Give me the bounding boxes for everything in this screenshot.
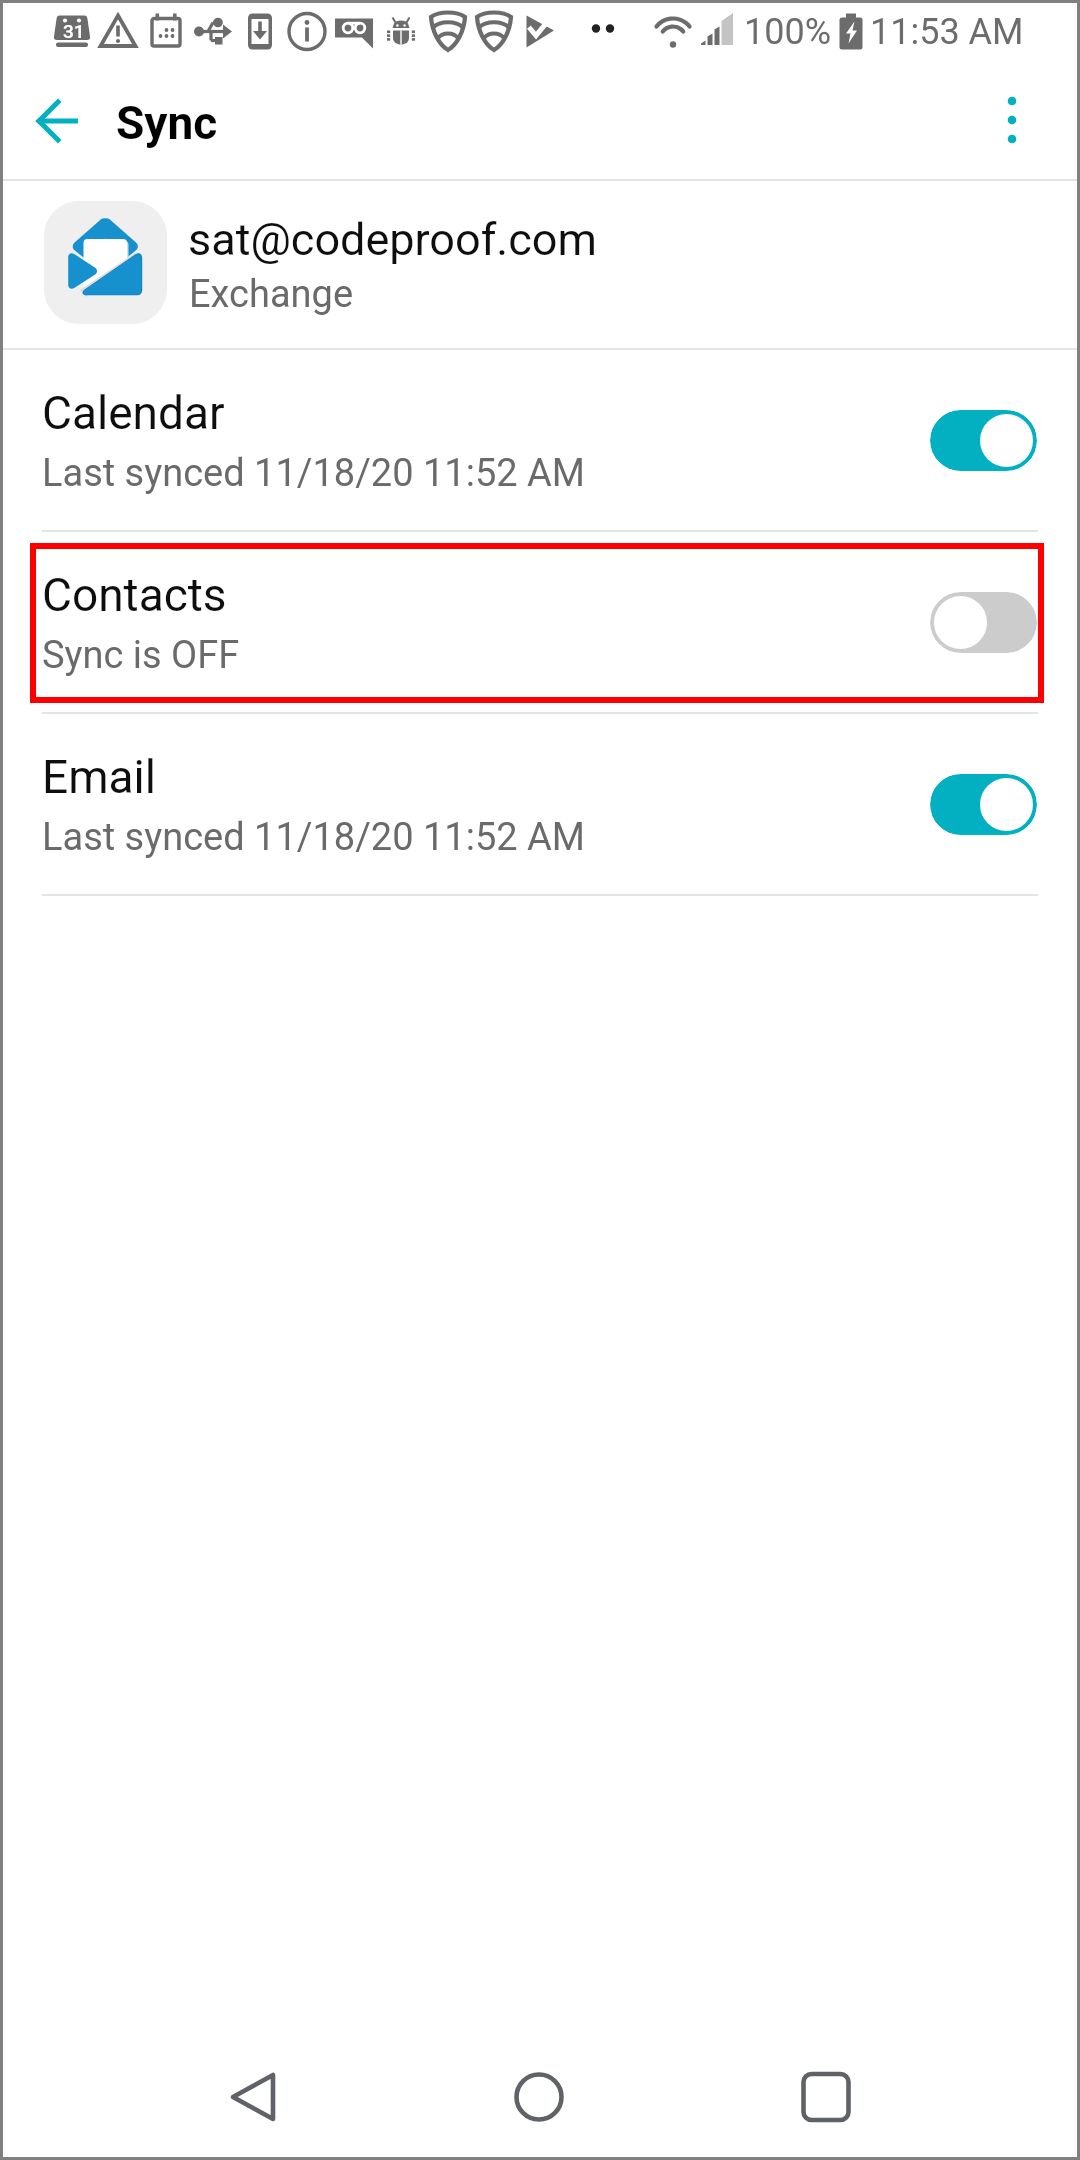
button[interactable]: Contacts [0, 532, 1080, 712]
button[interactable]: More options [974, 82, 1050, 158]
staticText: 100% [744, 11, 832, 53]
button[interactable]: Recents [771, 2042, 881, 2152]
staticText: Calendar [42, 386, 225, 440]
button[interactable]: Back [198, 2042, 308, 2152]
staticText: 31 [63, 20, 85, 42]
button[interactable]: Email sync on [930, 774, 1037, 835]
button[interactable]: sat@codeproof.com [0, 181, 1080, 348]
staticText: Sync [116, 96, 218, 150]
staticText: sat@codeproof.com [188, 213, 597, 266]
staticText: Exchange [189, 272, 354, 317]
button[interactable]: Home [484, 2042, 594, 2152]
button[interactable]: Calendar sync on [930, 410, 1037, 471]
staticText: Last synced 11/18/20 11:52 AM [42, 815, 586, 860]
button[interactable]: Contacts sync off [930, 592, 1037, 653]
staticText: Email [42, 750, 156, 804]
button[interactable]: Calendar [0, 350, 1080, 530]
staticText: 11:53 AM [870, 11, 1024, 53]
staticText: Sync is OFF [42, 633, 240, 678]
button[interactable]: Back [14, 77, 102, 165]
staticText: Contacts [42, 568, 227, 622]
staticText: Last synced 11/18/20 11:52 AM [42, 451, 586, 496]
button[interactable]: Email [0, 714, 1080, 894]
